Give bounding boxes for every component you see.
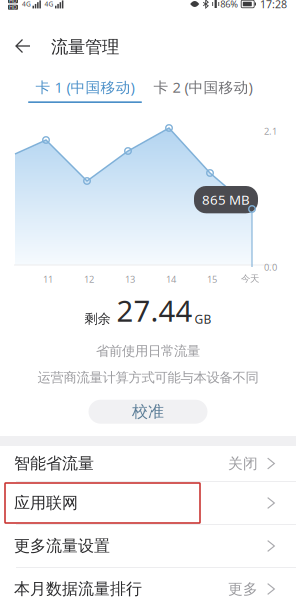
- button[interactable]: 本月数据流量排行: [0, 568, 296, 601]
- staticText: 省前使用日常流量: [96, 343, 200, 359]
- staticText: HD: [9, 4, 17, 11]
- staticText: 应用联网: [14, 493, 78, 513]
- staticText: 15: [207, 273, 217, 285]
- staticText: 更多流量设置: [14, 536, 110, 556]
- staticText: 卡 2 (中国移动): [153, 77, 252, 97]
- staticText: 4G: [22, 0, 31, 8]
- staticText: HD: [9, 0, 17, 4]
- staticText: 关闭: [228, 454, 258, 472]
- staticText: 卡 1 (中国移动): [35, 77, 134, 97]
- staticText: 更多: [228, 580, 258, 598]
- staticText: 剩余: [84, 311, 110, 327]
- staticText: 校准: [132, 402, 164, 422]
- staticText: 4G: [44, 0, 53, 8]
- staticText: GB: [194, 311, 211, 327]
- staticText: 865 MB: [202, 191, 250, 208]
- staticText: 27.44: [116, 291, 192, 330]
- button[interactable]: 校准: [88, 400, 207, 424]
- staticText: 运营商流量计算方式可能与本设备不同: [37, 369, 258, 386]
- staticText: 智能省流量: [14, 454, 94, 473]
- button[interactable]: 更多流量设置: [0, 525, 296, 567]
- staticText: 86%: [220, 0, 238, 10]
- staticText: 本月数据流量排行: [14, 579, 142, 599]
- button[interactable]: 卡 2 (中国移动): [146, 79, 282, 103]
- button[interactable]: 应用联网: [0, 482, 296, 524]
- staticText: 17:28: [260, 0, 287, 11]
- staticText: 今天: [241, 273, 259, 284]
- button[interactable]: 智能省流量: [0, 446, 296, 481]
- staticText: 0.0: [264, 261, 277, 273]
- staticText: 流量管理: [51, 36, 119, 58]
- button[interactable]: 返回: [7, 17, 39, 61]
- staticText: 13: [125, 273, 135, 285]
- staticText: 11: [43, 273, 53, 285]
- button[interactable]: 卡 1 (中国移动): [28, 79, 142, 103]
- staticText: 12: [84, 273, 94, 285]
- staticText: 14: [166, 273, 176, 285]
- staticText: 2.1: [264, 125, 277, 137]
